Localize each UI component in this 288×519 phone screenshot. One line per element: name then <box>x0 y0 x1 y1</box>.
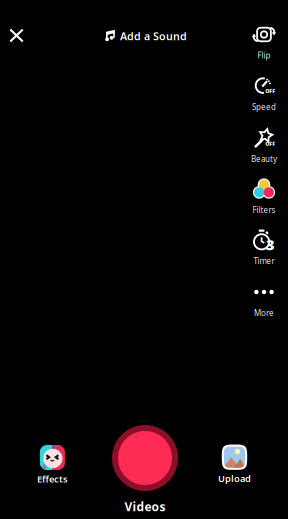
staticText: Flip <box>257 50 270 61</box>
button[interactable]: Add a Sound <box>96 23 196 49</box>
button[interactable]: Filters <box>240 178 288 222</box>
button[interactable]: Close <box>0 16 35 54</box>
staticText: Speed <box>252 102 276 112</box>
staticText: More <box>254 308 274 318</box>
staticText: Add a Sound <box>120 29 187 43</box>
button[interactable]: OFF <box>240 75 288 119</box>
button[interactable]: Videos <box>110 495 180 517</box>
button[interactable]: 3 <box>240 229 288 273</box>
staticText: OFF <box>265 87 275 95</box>
button[interactable]: OFF <box>240 127 288 171</box>
button[interactable]: Upload <box>199 444 269 484</box>
staticText: Videos <box>124 498 165 514</box>
staticText: Beauty <box>251 154 277 164</box>
staticText: OFF <box>265 140 275 147</box>
staticText: Timer <box>253 256 274 266</box>
button[interactable]: Flip <box>240 23 288 67</box>
staticText: 3 <box>266 235 275 254</box>
staticText: Filters <box>252 205 275 215</box>
staticText: Effects <box>37 473 68 485</box>
button[interactable]: Effects <box>17 445 87 485</box>
button[interactable]: Record <box>112 425 178 491</box>
button[interactable]: More <box>240 281 288 325</box>
staticText: Upload <box>218 472 251 484</box>
